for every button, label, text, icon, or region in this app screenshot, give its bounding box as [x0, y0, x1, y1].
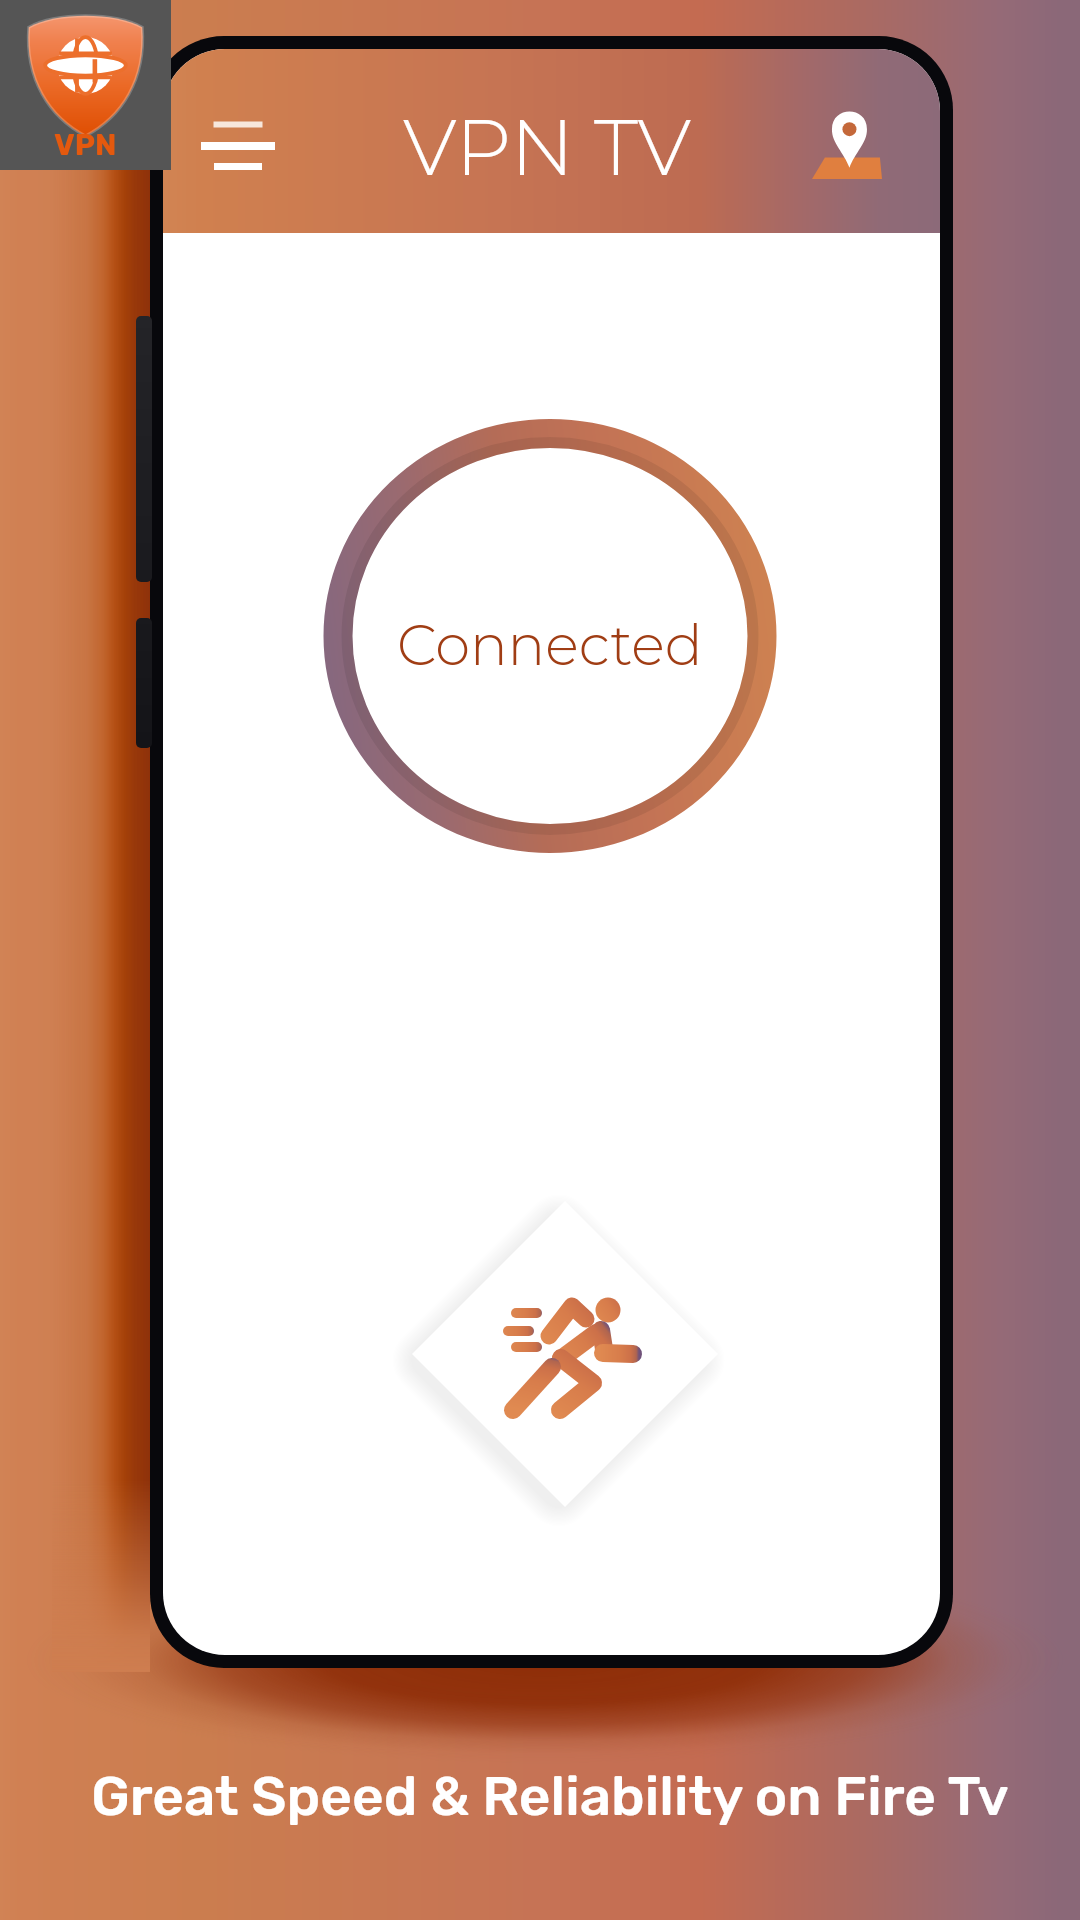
button[interactable]: Open navigation menu — [163, 49, 313, 233]
staticText: VPN TV — [403, 99, 692, 194]
button[interactable]: Choose server location — [790, 49, 940, 233]
staticText: Great Speed & Reliability on Fire Tv — [91, 1764, 1009, 1829]
staticText: VPN — [54, 127, 117, 163]
staticText: Connected — [397, 611, 703, 679]
